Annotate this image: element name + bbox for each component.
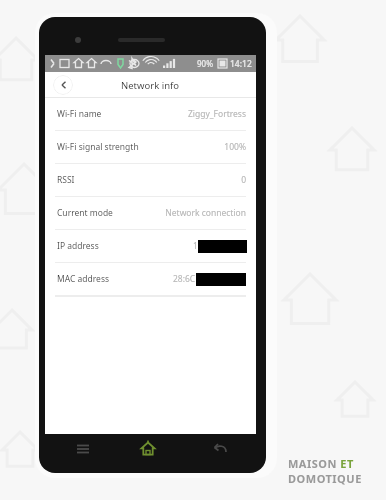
button[interactable]: Back [208, 437, 232, 461]
staticText: Wi-Fi name [57, 108, 102, 120]
button[interactable]: Wi-Fi signal strength [45, 131, 256, 164]
button[interactable]: Wi-Fi name [45, 98, 256, 131]
staticText: Current mode [57, 207, 113, 219]
staticText: 0 [241, 174, 246, 186]
button[interactable]: IP address [45, 230, 256, 263]
button[interactable]: Current mode [45, 197, 256, 230]
staticText: MAC address [57, 273, 110, 285]
staticText: 1 [193, 240, 198, 252]
button[interactable]: Home [136, 437, 160, 461]
staticText: 14:12 [230, 58, 252, 70]
staticText: Ziggy_Fortress [187, 108, 246, 120]
button[interactable]: Back [53, 75, 73, 95]
staticText: Network connection [165, 207, 246, 219]
staticText: ET [337, 456, 354, 471]
staticText: 100% [224, 141, 246, 153]
staticText: IP address [57, 240, 99, 252]
staticText: DOMOTIQUE [288, 471, 362, 486]
button[interactable]: MAC address [45, 263, 256, 296]
staticText: 28:6C [173, 273, 196, 285]
staticText: RSSI [57, 174, 75, 186]
button[interactable]: Menu [71, 437, 95, 461]
staticText: 90% [197, 58, 213, 69]
staticText: Wi-Fi signal strength [57, 141, 139, 153]
staticText: Network info [121, 79, 180, 92]
staticText: MAISON [288, 456, 337, 471]
button[interactable]: RSSI [45, 164, 256, 197]
